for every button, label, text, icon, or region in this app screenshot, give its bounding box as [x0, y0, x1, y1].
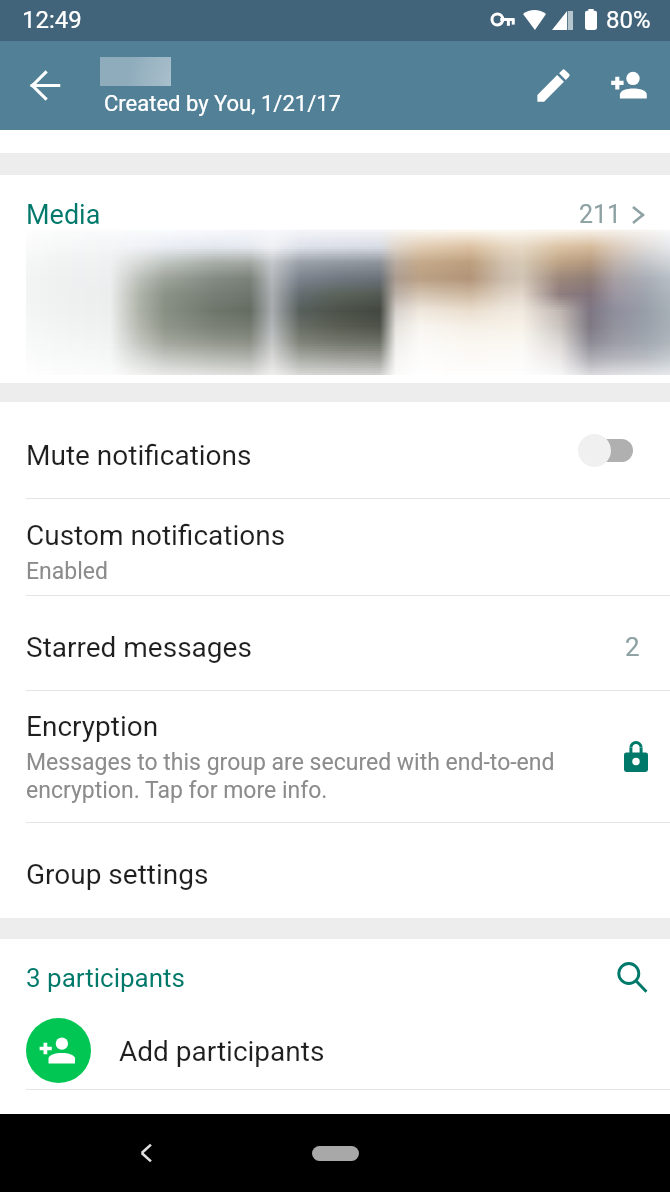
staticText: 3 participants — [26, 963, 186, 993]
staticText: Enabled — [26, 558, 108, 585]
staticText: Group settings — [26, 858, 209, 891]
staticText: 2 — [625, 632, 640, 662]
staticText: Encryption — [26, 710, 159, 743]
button[interactable]: Search participants — [608, 954, 656, 1002]
button[interactable]: Add participants — [0, 1001, 670, 1089]
staticText: Starred messages — [26, 631, 252, 664]
staticText: Messages to this group are secured with … — [26, 749, 555, 804]
button[interactable]: Edit group name — [524, 56, 582, 114]
staticText: Created by You, 1/21/17 — [104, 91, 341, 117]
staticText: 12:49 — [22, 6, 82, 34]
button[interactable]: Group settings — [0, 823, 670, 918]
button[interactable]: Home — [312, 1146, 359, 1161]
button[interactable]: Mute notifications — [0, 402, 670, 498]
button[interactable]: Back — [130, 1136, 164, 1170]
staticText: 80% — [606, 6, 651, 34]
button[interactable]: Starred messages — [0, 596, 670, 690]
staticText: Custom notifications — [26, 519, 286, 552]
staticText: Add participants — [119, 1035, 325, 1068]
button[interactable]: Custom notifications — [0, 499, 670, 595]
staticText: Media — [26, 199, 101, 231]
staticText: Mute notifications — [26, 439, 252, 472]
staticText: 211 — [579, 200, 622, 229]
button[interactable]: Encryption — [0, 691, 670, 822]
button[interactable]: Add participant — [600, 57, 658, 115]
button[interactable]: Back — [19, 59, 71, 111]
button[interactable]: Media — [0, 175, 670, 232]
